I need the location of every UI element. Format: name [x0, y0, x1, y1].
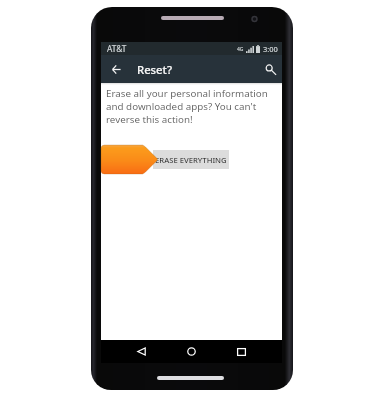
- button[interactable]: Back: [125, 340, 158, 363]
- staticText: Reset?: [137, 62, 172, 77]
- button[interactable]: Home: [175, 340, 208, 363]
- button[interactable]: Search: [260, 59, 280, 79]
- staticText: Erase all your personal information and …: [106, 87, 272, 126]
- staticText: 4G: [237, 46, 244, 53]
- staticText: ERASE EVERYTHING: [155, 155, 227, 165]
- button[interactable]: Recents: [225, 340, 258, 363]
- button[interactable]: Back: [106, 59, 126, 79]
- staticText: 3:00: [263, 44, 278, 54]
- staticText: AT&T: [107, 43, 127, 54]
- button[interactable]: ERASE EVERYTHING: [153, 150, 229, 169]
